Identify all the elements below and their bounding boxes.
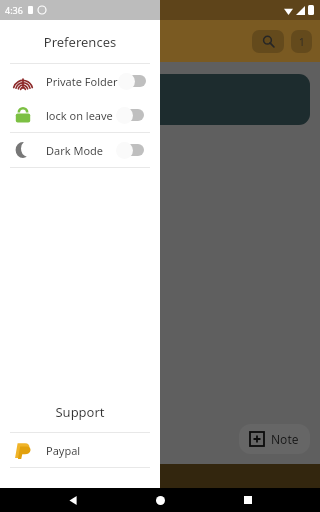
staticText: Note (271, 431, 299, 447)
staticText: Private Folder (46, 74, 118, 89)
staticText: 1 (299, 35, 305, 49)
button[interactable]: Note (239, 424, 310, 454)
button[interactable]: Private Folder (0, 64, 160, 98)
staticText: 4:36 (5, 4, 23, 16)
button[interactable]: Search (252, 30, 284, 53)
staticText: Preferences (0, 33, 160, 51)
button[interactable]: Back (58, 488, 88, 512)
button[interactable]: Paypal (0, 433, 160, 467)
button[interactable]: 1 (291, 30, 312, 53)
staticText: Dark Mode (46, 143, 104, 158)
button[interactable]: Home (145, 488, 175, 512)
staticText: Paypal (46, 443, 81, 458)
button[interactable]: Recents (233, 488, 263, 512)
button[interactable]: lock on leave (0, 98, 160, 132)
button[interactable]: Dark Mode (0, 133, 160, 167)
staticText: Support (0, 403, 160, 421)
button[interactable] (8, 74, 310, 125)
staticText: lock on leave (46, 108, 113, 123)
